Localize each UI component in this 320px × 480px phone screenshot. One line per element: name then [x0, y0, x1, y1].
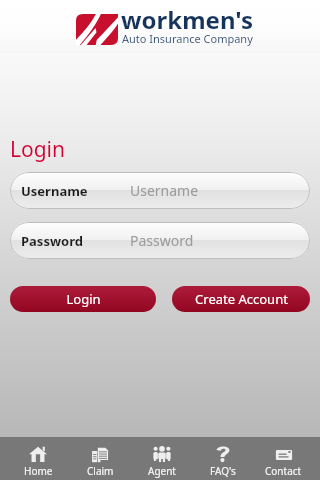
- staticText: Login: [10, 135, 66, 164]
- staticText: Home: [24, 464, 53, 478]
- staticText: Contact: [265, 464, 302, 478]
- staticText: Create Account: [195, 290, 288, 308]
- button[interactable]: Create Account: [172, 286, 310, 312]
- button[interactable]: Contact: [253, 437, 314, 480]
- staticText: Login: [66, 290, 101, 308]
- staticText: Username: [130, 181, 199, 200]
- button[interactable]: Login: [10, 286, 156, 312]
- staticText: FAQ's: [210, 464, 236, 478]
- button[interactable]: Home: [7, 437, 69, 480]
- staticText: workmen's: [121, 3, 253, 36]
- staticText: Agent: [148, 464, 176, 478]
- button[interactable]: FAQ's: [192, 437, 253, 480]
- button[interactable]: Username: [10, 172, 310, 209]
- staticText: Auto Insurance Company: [122, 31, 253, 46]
- staticText: Password: [21, 232, 83, 250]
- button[interactable]: Claim: [69, 437, 131, 480]
- button[interactable]: Password: [10, 222, 310, 259]
- staticText: Claim: [87, 464, 114, 478]
- staticText: Password: [130, 231, 194, 250]
- staticText: Username: [21, 182, 88, 200]
- button[interactable]: Agent: [131, 437, 192, 480]
